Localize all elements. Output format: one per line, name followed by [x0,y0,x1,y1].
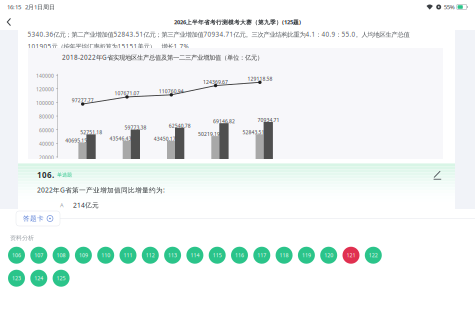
staticText: 答题卡 [23,214,44,223]
staticText: 101905元（按年平均汇率折算为15151美元），增长1.7%。 [27,42,194,51]
staticText: 97277.77 [72,97,94,104]
button[interactable]: 122 [365,247,382,264]
button[interactable]: 125 [53,270,70,287]
button[interactable]: 114 [186,247,203,264]
staticText: 115 [213,252,222,259]
staticText: 117 [257,252,266,259]
staticText: 110 [101,252,110,259]
button[interactable]: 答题卡 [16,211,60,226]
button[interactable]: 返回 [0,14,18,30]
button[interactable]: 118 [276,247,293,264]
staticText: 107 [34,252,43,259]
staticText: 111 [123,252,132,259]
staticText: 107671.07 [114,90,139,97]
staticText: 40695.15 [65,137,87,144]
staticText: 40000 [39,140,54,147]
staticText: 110760.94 [159,88,184,95]
staticText: 2022年G省第一产业增加值同比增量约为: [37,185,165,194]
staticText: 106 [12,252,21,259]
staticText: 116 [235,252,244,259]
staticText: 112 [146,252,155,259]
button[interactable]: 120 [320,247,337,264]
staticText: 113 [168,252,177,259]
button[interactable]: 111 [119,247,136,264]
staticText: 119 [302,252,311,259]
button[interactable]: 124 [30,270,47,287]
staticText: 106. [37,169,54,180]
button[interactable]: 笔记 [432,169,443,180]
staticText: 60000 [39,127,54,134]
staticText: 单选题 [57,172,72,178]
staticText: 121 [346,252,355,259]
staticText: 123 [12,275,21,282]
staticText: 43546.43 [109,135,131,142]
staticText: 80000 [39,113,54,120]
staticText: 资料分析 [10,234,34,242]
staticText: 214亿元 [73,200,99,210]
button[interactable]: 106 [8,247,25,264]
button[interactable]: 108 [53,247,70,264]
button[interactable]: 117 [253,247,270,264]
staticText: 122 [369,252,378,259]
staticText: 59773.38 [124,124,146,131]
staticText: 108 [57,252,66,259]
staticText: 20000 [39,154,54,161]
button[interactable]: 123 [8,270,25,287]
button[interactable]: 113 [164,247,181,264]
staticText: 129118.58 [247,75,272,82]
staticText: 124 [34,275,43,282]
staticText: 109 [79,252,88,259]
button[interactable]: 116 [231,247,248,264]
staticText: 2018-2022年G省实现地区生产总值及第一二三产业增加值（单位：亿元） [62,53,263,62]
staticText: 125 [57,275,66,282]
button[interactable]: 115 [209,247,226,264]
button[interactable]: 119 [298,247,315,264]
staticText: 2026上半年省考行测模考大赛（第九季）(125题) [174,18,301,26]
staticText: 5340.36亿元；第二产业增加值52843.51亿元；第三产业增加值70934… [27,30,409,39]
staticText: 50219.19 [198,131,220,137]
button[interactable]: 109 [75,247,92,264]
staticText: 52751.18 [80,129,102,136]
staticText: 69146.82 [213,118,235,125]
staticText: 16:15 2月1日周日 [7,3,55,11]
button[interactable]: 121 [342,247,359,264]
staticText: 62540.78 [169,122,191,129]
staticText: A [60,201,64,209]
staticText: 114 [190,252,199,259]
staticText: 118 [280,252,289,259]
staticText: 43450.17 [154,135,176,142]
button[interactable]: 107 [30,247,47,264]
button[interactable]: 110 [97,247,114,264]
button[interactable]: 112 [142,247,159,264]
staticText: 52843.51 [242,129,264,136]
staticText: 120 [324,252,333,259]
staticText: 140000 [36,72,54,79]
staticText: 120000 [36,86,54,93]
staticText: 55% [444,3,455,11]
staticText: 70934.71 [257,117,279,123]
staticText: 124369.67 [203,79,228,85]
staticText: 100000 [36,100,54,106]
